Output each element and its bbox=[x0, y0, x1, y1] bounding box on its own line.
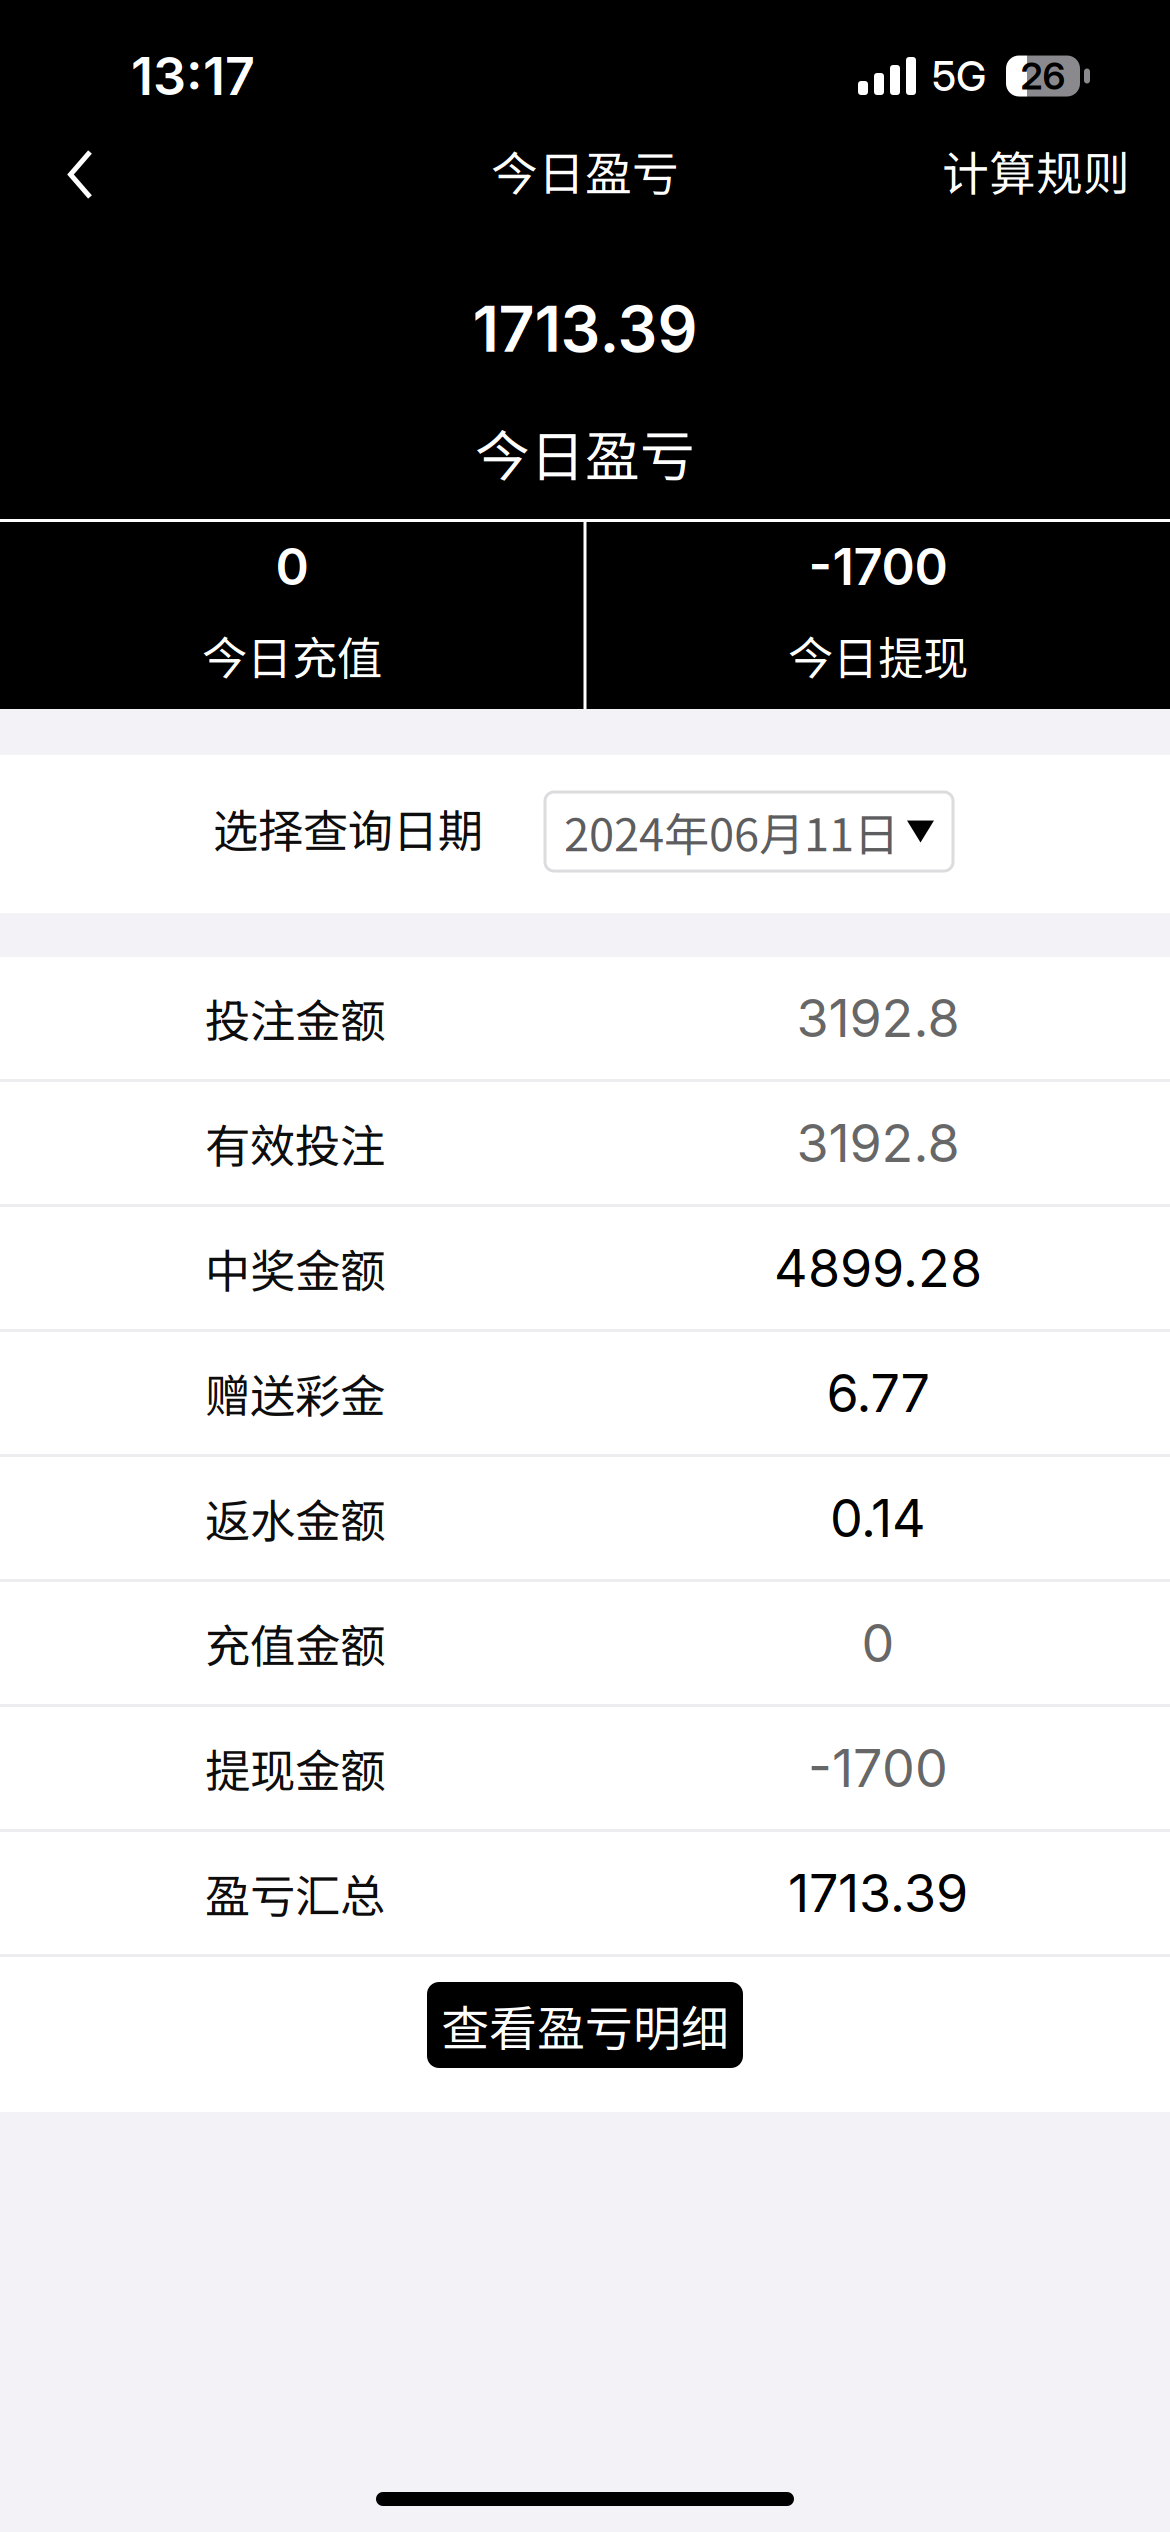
staticText: 投注金额 bbox=[205, 985, 385, 1051]
staticText: 中奖金额 bbox=[205, 1235, 385, 1301]
staticText: 0.14 bbox=[830, 1486, 926, 1549]
staticText: 赠送彩金 bbox=[205, 1360, 385, 1426]
staticText: 今日盈亏 bbox=[475, 413, 695, 492]
staticText: 1713.39 bbox=[788, 1861, 968, 1924]
staticText: 盈亏汇总 bbox=[205, 1860, 385, 1926]
staticText: 2024年06月11日 bbox=[564, 799, 899, 864]
button[interactable]: Back bbox=[0, 123, 137, 226]
staticText: 今日盈亏 bbox=[491, 137, 679, 204]
button[interactable]: 2024年06月11日 bbox=[545, 785, 953, 871]
staticText: 0 bbox=[861, 1611, 894, 1674]
staticText: 1713.39 bbox=[472, 291, 697, 367]
staticText: -1700 bbox=[808, 536, 947, 597]
staticText: 26 bbox=[1020, 53, 1065, 99]
staticText: 提现金额 bbox=[205, 1735, 385, 1801]
staticText: 今日提现 bbox=[788, 622, 968, 688]
staticText: 5G bbox=[932, 51, 986, 101]
staticText: 6.77 bbox=[826, 1361, 929, 1424]
staticText: -1700 bbox=[808, 1736, 948, 1799]
staticText: 4899.28 bbox=[774, 1236, 982, 1299]
staticText: 返水金额 bbox=[205, 1485, 385, 1551]
button[interactable]: 查看盈亏明细 bbox=[427, 1982, 743, 2068]
staticText: 今日充值 bbox=[202, 622, 382, 688]
button[interactable]: 计算规则 bbox=[942, 123, 1170, 226]
staticText: 查看盈亏明细 bbox=[441, 1990, 729, 2060]
staticText: 有效投注 bbox=[205, 1110, 385, 1176]
staticText: 13:17 bbox=[131, 44, 255, 107]
staticText: 0 bbox=[275, 536, 308, 597]
staticText: 3192.8 bbox=[796, 986, 959, 1049]
staticText: 充值金额 bbox=[205, 1610, 385, 1676]
staticText: 选择查询日期 bbox=[213, 795, 483, 861]
staticText: 3192.8 bbox=[796, 1111, 959, 1174]
staticText: 计算规则 bbox=[942, 137, 1130, 204]
